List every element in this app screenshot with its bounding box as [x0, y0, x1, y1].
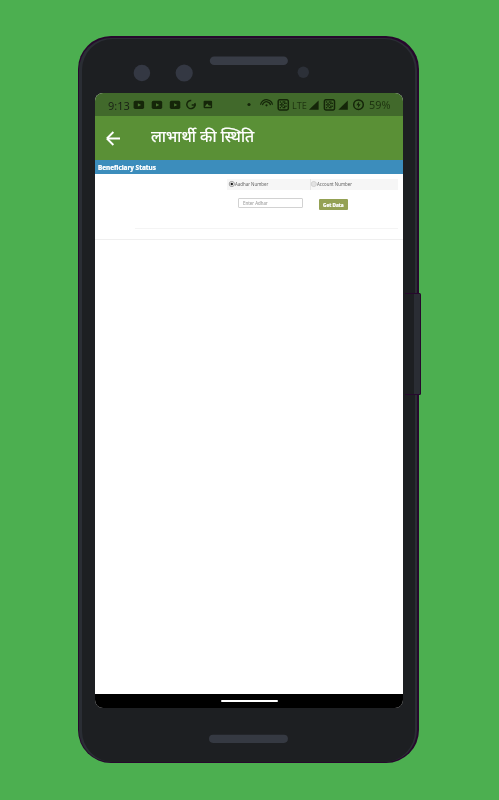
staticText: Get Data: [323, 202, 344, 208]
button[interactable]: Get Data: [319, 199, 348, 210]
button[interactable]: Aadhar Number option: [229, 179, 238, 189]
staticText: LTE: [292, 99, 307, 112]
staticText: 9:13: [108, 98, 130, 113]
staticText: Aadhar Number: [235, 181, 269, 187]
button[interactable]: Account Number option: [311, 179, 320, 189]
staticText: Enter Adhar: [243, 200, 268, 206]
staticText: लाभार्थी की स्थिति: [151, 125, 255, 147]
button[interactable]: Enter Adhar: [238, 198, 303, 208]
staticText: Account Number: [317, 181, 352, 187]
staticText: Beneficiary Status: [98, 163, 156, 172]
button[interactable]: Back: [96, 116, 130, 160]
staticText: 59%: [369, 97, 391, 112]
